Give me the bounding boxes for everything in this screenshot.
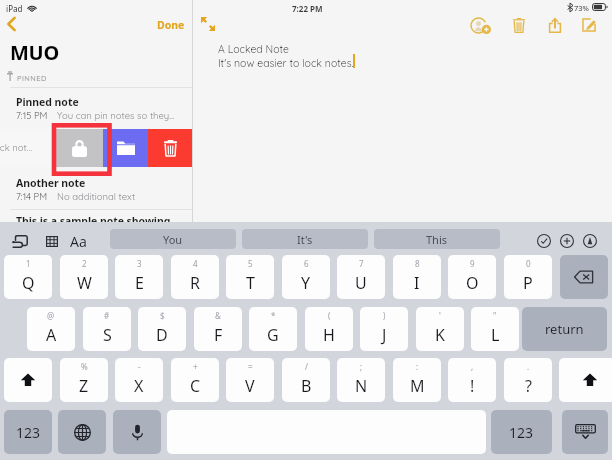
staticText: G [267, 324, 279, 346]
staticText: F [214, 324, 223, 346]
staticText: ? [525, 375, 532, 397]
staticText: * [271, 310, 276, 321]
other: Backspace [574, 270, 594, 284]
button[interactable]: & [194, 307, 242, 351]
staticText: " [493, 310, 497, 321]
button[interactable]: ) [360, 307, 408, 351]
staticText: L [491, 324, 500, 346]
button[interactable]: It's [242, 229, 368, 249]
button[interactable]: Delete [508, 14, 530, 36]
button[interactable]: Checklist [535, 232, 552, 249]
button[interactable]: 0 [504, 255, 552, 299]
staticText: . [527, 361, 530, 372]
button[interactable]: . [504, 358, 552, 402]
button[interactable]: Add attachment [558, 232, 575, 249]
button[interactable]: $ [138, 307, 186, 351]
button[interactable]: 1 [4, 255, 52, 299]
button[interactable]: Aa [67, 230, 89, 252]
button[interactable]: 6 [282, 255, 330, 299]
staticText: % [81, 361, 88, 372]
button[interactable]: ' [416, 307, 464, 351]
staticText: D [156, 324, 168, 346]
button[interactable]: * [249, 307, 297, 351]
button[interactable]: Next keyboard [58, 410, 106, 454]
button[interactable]: ( [305, 307, 353, 351]
button[interactable]: 123 [4, 410, 52, 454]
button[interactable]: 8 [393, 255, 441, 299]
button[interactable]: 9 [448, 255, 496, 299]
staticText: E [135, 272, 144, 294]
button[interactable]: 123 [491, 410, 552, 454]
button[interactable]: Share [544, 14, 566, 36]
staticText: & [215, 310, 221, 321]
staticText: S [103, 324, 112, 346]
button[interactable]: Hide keyboard [562, 410, 608, 454]
button[interactable]: : [393, 358, 441, 402]
staticText: N [355, 375, 368, 397]
staticText: This [426, 232, 448, 247]
staticText: / [305, 361, 308, 372]
staticText: $ [160, 310, 165, 321]
staticText: 7:22 PM [292, 3, 323, 14]
button[interactable]: Delete [148, 129, 192, 167]
staticText: I [414, 272, 420, 294]
button[interactable]: " [471, 307, 519, 351]
staticText: 123 [16, 423, 41, 442]
staticText: 7:15 PM [16, 109, 48, 121]
button[interactable]: return [522, 307, 607, 351]
button[interactable]: Table [42, 231, 62, 251]
button[interactable]: ; [337, 358, 385, 402]
staticText: = [248, 361, 253, 372]
staticText: 5 [248, 258, 253, 269]
button[interactable]: Compose [578, 14, 600, 36]
button[interactable]: 5 [226, 255, 274, 299]
staticText: C [190, 375, 201, 397]
button[interactable]: - [115, 358, 163, 402]
button[interactable]: Dictation [113, 410, 161, 454]
button[interactable]: 2 [60, 255, 108, 299]
button[interactable]: = [226, 358, 274, 402]
button[interactable]: , [448, 358, 496, 402]
button[interactable]: % [60, 358, 108, 402]
staticText: A [46, 324, 57, 346]
button[interactable]: + [171, 358, 219, 402]
staticText: ; [360, 361, 363, 372]
other: Shift [582, 372, 598, 388]
button[interactable]: 3 [115, 255, 163, 299]
staticText: , [471, 361, 474, 372]
staticText: Y [301, 272, 311, 294]
staticText: It's now easier to lock notes. [218, 56, 354, 69]
staticText: Aa [70, 232, 87, 251]
button[interactable]: This is a sample note showing [0, 210, 192, 222]
button[interactable]: @ [27, 307, 75, 351]
button[interactable]: Undo [10, 231, 30, 251]
staticText: It's [297, 232, 313, 247]
staticText: @ [47, 310, 55, 321]
button[interactable]: Pinned note [0, 88, 192, 129]
button[interactable]: Move to folder [103, 129, 148, 167]
button[interactable]: Add people [469, 14, 492, 37]
button[interactable]: Another note [0, 167, 192, 209]
button[interactable]: # [83, 307, 131, 351]
button[interactable]: / [282, 358, 330, 402]
button[interactable]: This [374, 229, 500, 249]
staticText: Pinned note [16, 95, 79, 109]
button[interactable]: Backspace [560, 255, 608, 299]
button[interactable]: 7 [337, 255, 385, 299]
button[interactable]: Shift [4, 358, 52, 402]
button[interactable]: Expand [198, 14, 218, 34]
staticText: - [138, 361, 141, 372]
staticText: This is a sample note showing [16, 214, 171, 226]
staticText: 3 [137, 258, 142, 269]
button[interactable]: Done [152, 15, 190, 35]
staticText: 8 [415, 258, 420, 269]
staticText: M [410, 375, 425, 397]
button[interactable]: Shift [559, 358, 612, 402]
button[interactable]: You [110, 229, 236, 249]
button[interactable]: Lock [56, 129, 103, 167]
button[interactable]: Back [1, 14, 21, 34]
button[interactable]: Markup [581, 232, 598, 249]
button[interactable]: 4 [171, 255, 219, 299]
staticText: : [416, 361, 419, 372]
